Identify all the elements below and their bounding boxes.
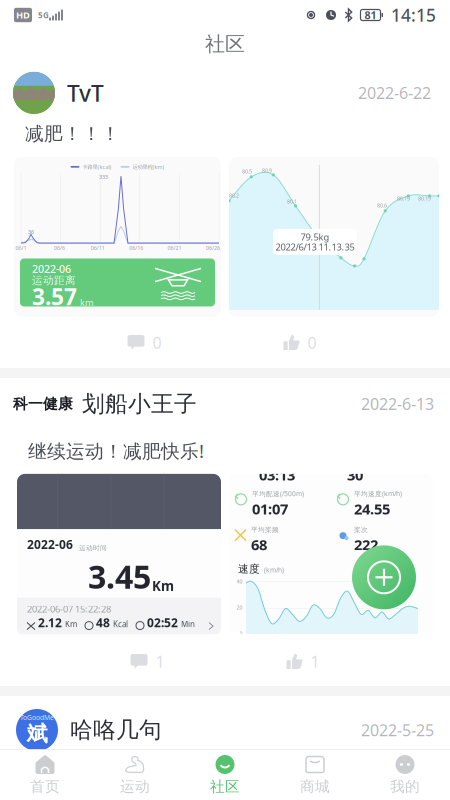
staticText: 80.6 xyxy=(377,202,387,209)
staticText: 14:15 xyxy=(391,3,436,26)
button[interactable]: Add xyxy=(352,545,416,609)
staticText: 社区 xyxy=(205,32,245,56)
button[interactable]: 首页 xyxy=(0,750,90,800)
staticText: 40 xyxy=(236,578,242,585)
staticText: 2022-06-07 15:22:28 xyxy=(27,603,111,615)
staticText: ToGoodMe xyxy=(20,713,54,722)
staticText: 商城 xyxy=(300,777,330,795)
staticText: 30 xyxy=(347,465,363,485)
staticText: 速度 xyxy=(238,562,260,575)
staticText: 继续运动！减肥快乐! xyxy=(28,438,204,463)
button[interactable]: 运动 xyxy=(90,750,180,800)
staticText: 03:13 xyxy=(259,465,295,485)
staticText: 平均桨频 xyxy=(251,526,279,534)
staticText: 06/1 xyxy=(15,244,26,251)
staticText: 社区 xyxy=(210,777,240,795)
staticText: 一 xyxy=(28,395,43,413)
staticText: 减肥！！！ xyxy=(25,122,120,145)
staticText: 运动距离 xyxy=(32,274,76,287)
staticText: 2022-6-22 xyxy=(358,82,431,103)
button[interactable]: 0 xyxy=(277,328,322,357)
staticText: 2022-06 xyxy=(27,536,73,552)
staticText: 卡路里(kcal) xyxy=(82,163,111,170)
staticText: 桨次 xyxy=(354,526,368,534)
staticText: 20 xyxy=(236,604,242,611)
staticText: Min xyxy=(181,619,195,629)
staticText: 36 xyxy=(28,228,34,235)
staticText: 01:07 xyxy=(252,499,288,519)
button[interactable]: 社区 xyxy=(180,750,270,800)
staticText: Kcal xyxy=(113,619,128,629)
staticText: 06/16 xyxy=(129,244,143,251)
staticText: 80.2 xyxy=(229,192,239,199)
staticText: 79.5kg xyxy=(300,231,329,243)
staticText: Km xyxy=(152,577,174,595)
staticText: 科 xyxy=(13,395,28,413)
staticText: km xyxy=(80,296,94,308)
staticText: 0 xyxy=(307,332,316,353)
staticText: 2022/6/13 11.13.35 xyxy=(275,241,354,253)
staticText: 333 xyxy=(99,173,108,180)
staticText: 3.57 xyxy=(32,281,77,311)
staticText: 划船小王子 xyxy=(82,390,197,418)
staticText: 斌 xyxy=(26,721,47,747)
staticText: 运动里程(km) xyxy=(132,163,164,170)
staticText: 48 xyxy=(96,615,110,630)
staticText: 06/26 xyxy=(206,244,220,251)
staticText: 1 xyxy=(310,651,319,672)
staticText: 康 xyxy=(58,395,73,413)
staticText: 2022-06 xyxy=(32,262,71,276)
staticText: Km xyxy=(65,619,77,629)
staticText: 运动 xyxy=(120,777,150,795)
staticText: TvT xyxy=(67,78,104,108)
staticText: (km/h) xyxy=(264,566,284,574)
staticText: 1 xyxy=(155,651,164,672)
button[interactable]: 0 xyxy=(121,328,167,357)
button[interactable]: 1 xyxy=(124,647,170,676)
staticText: 80.19 xyxy=(397,195,410,202)
button[interactable]: 1 xyxy=(280,647,325,676)
staticText: 0 xyxy=(239,630,242,637)
staticText: 81 xyxy=(364,8,376,22)
staticText: 80.9 xyxy=(262,167,272,174)
staticText: 首页 xyxy=(30,777,60,795)
staticText: 5G xyxy=(38,10,49,20)
staticText: 06/6 xyxy=(54,244,65,251)
staticText: 2022-6-13 xyxy=(361,393,434,414)
staticText: 80.1 xyxy=(287,198,297,205)
staticText: 06/11 xyxy=(91,244,105,251)
staticText: 02:52 xyxy=(147,615,178,630)
staticText: 2.12 xyxy=(38,615,62,630)
staticText: 24.55 xyxy=(354,499,390,519)
button[interactable]: 我的 xyxy=(360,750,450,800)
staticText: 80.5 xyxy=(242,168,252,175)
staticText: HD xyxy=(16,9,30,21)
staticText: 06/21 xyxy=(168,244,182,251)
button[interactable]: 商城 xyxy=(270,750,360,800)
staticText: 3.45 xyxy=(88,555,151,598)
staticText: 平均配速(/500m) xyxy=(252,489,304,498)
staticText: 80.19 xyxy=(418,195,431,202)
staticText: 222 xyxy=(354,535,378,554)
staticText: 健 xyxy=(43,395,58,413)
staticText: 哈咯几句 xyxy=(70,716,162,744)
staticText: 我的 xyxy=(390,777,420,795)
staticText: 运动时间 xyxy=(79,544,107,552)
staticText: 2022-5-25 xyxy=(361,719,434,741)
staticText: 平均速度(km/h) xyxy=(354,489,402,498)
staticText: 68 xyxy=(251,535,267,554)
staticText: 0 xyxy=(152,332,161,353)
